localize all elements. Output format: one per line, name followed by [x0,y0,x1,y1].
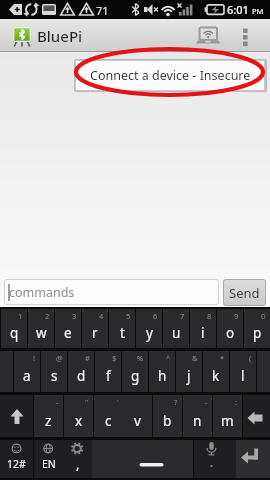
staticText: - [205,397,208,407]
staticText: 7 [180,311,185,321]
button[interactable]: , [63,440,92,478]
staticText: ? [174,397,178,407]
staticText: p [253,324,262,342]
staticText: @ [56,353,63,363]
button[interactable] [194,440,236,478]
button[interactable]: m [213,395,242,437]
staticText: f [106,367,111,385]
button[interactable]: l [230,351,256,392]
button[interactable]: i [190,309,216,348]
button[interactable]: n [183,395,212,437]
staticText: x [75,412,83,430]
staticText: 2 [45,311,50,321]
staticText: 8 [207,311,212,321]
staticText: 1 [18,311,23,321]
button[interactable]: b [153,395,182,437]
button[interactable]: z [34,395,63,437]
staticText: " [85,397,89,407]
button[interactable]: e [55,309,81,348]
button[interactable]: Send [223,279,266,306]
staticText: 9 [234,311,239,321]
staticText: c [105,412,112,430]
button[interactable] [195,23,225,49]
staticText: 6:01 [227,2,249,17]
staticText: ^ [166,353,171,363]
staticText: 0 [261,311,266,321]
button[interactable] [243,395,270,437]
staticText: y [146,324,153,342]
staticText: ( [249,353,252,363]
staticText: $ [112,353,117,363]
staticText: o [226,324,235,342]
staticText: t [120,324,125,342]
button[interactable]: 12# [0,440,33,478]
button[interactable]: g [122,351,148,392]
button[interactable]: Connect a device - Insecure [75,60,265,91]
staticText: EN [42,457,56,471]
button[interactable]: t [109,309,135,348]
staticText: - [56,397,59,407]
staticText: q [10,324,19,342]
button[interactable]: commands [4,279,219,305]
staticText: & [192,353,198,363]
staticText: ! [33,353,36,363]
staticText: b [163,412,172,430]
button[interactable] [0,19,52,52]
staticText: j [187,367,191,385]
staticText: 71 [96,3,109,18]
staticText: : [235,397,238,407]
button[interactable]: p [244,309,270,348]
button[interactable]: u [163,309,189,348]
button[interactable]: EN [34,440,63,478]
staticText: e [64,324,72,342]
button[interactable] [236,19,256,52]
button[interactable]: x [64,395,93,437]
staticText: % [137,353,144,363]
button[interactable]: r [82,309,108,348]
staticText: z [45,412,52,430]
button[interactable]: j [176,351,202,392]
button[interactable]: s [41,351,67,392]
staticText: u [172,324,181,342]
staticText: l [241,367,245,385]
button[interactable]: a [14,351,40,392]
button[interactable]: h [149,351,175,392]
button[interactable]: c [94,395,123,437]
button[interactable]: k [203,351,229,392]
staticText: 12# [7,457,26,471]
staticText: s [51,367,58,385]
staticText: Send [229,284,260,302]
staticText: BluePi [37,26,83,46]
staticText: m [221,412,234,430]
staticText: Connect a device - Insecure [90,67,251,84]
staticText: w [36,324,47,342]
staticText: * [220,353,225,363]
staticText: d [77,367,86,385]
button[interactable]: y [136,309,162,348]
staticText: 5 [126,311,131,321]
button[interactable] [0,395,33,437]
staticText: r [92,324,98,342]
staticText: 4 [99,311,104,321]
staticText: n [193,412,202,430]
staticText: k [212,367,220,385]
button[interactable]: w [28,309,54,348]
button[interactable]: d [68,351,94,392]
staticText: # [85,353,90,363]
button[interactable]: q [1,309,27,348]
staticText: commands [9,284,75,301]
staticText: h [158,367,167,385]
staticText: g [131,367,140,385]
staticText: , [76,455,80,473]
button[interactable]: v [123,395,152,437]
staticText: 3 [72,311,77,321]
staticText: PM [252,6,264,16]
button[interactable] [236,440,270,478]
staticText: v [134,412,141,430]
button[interactable] [92,440,193,478]
button[interactable]: f [95,351,121,392]
staticText: ' [117,397,119,407]
button[interactable]: o [217,309,243,348]
